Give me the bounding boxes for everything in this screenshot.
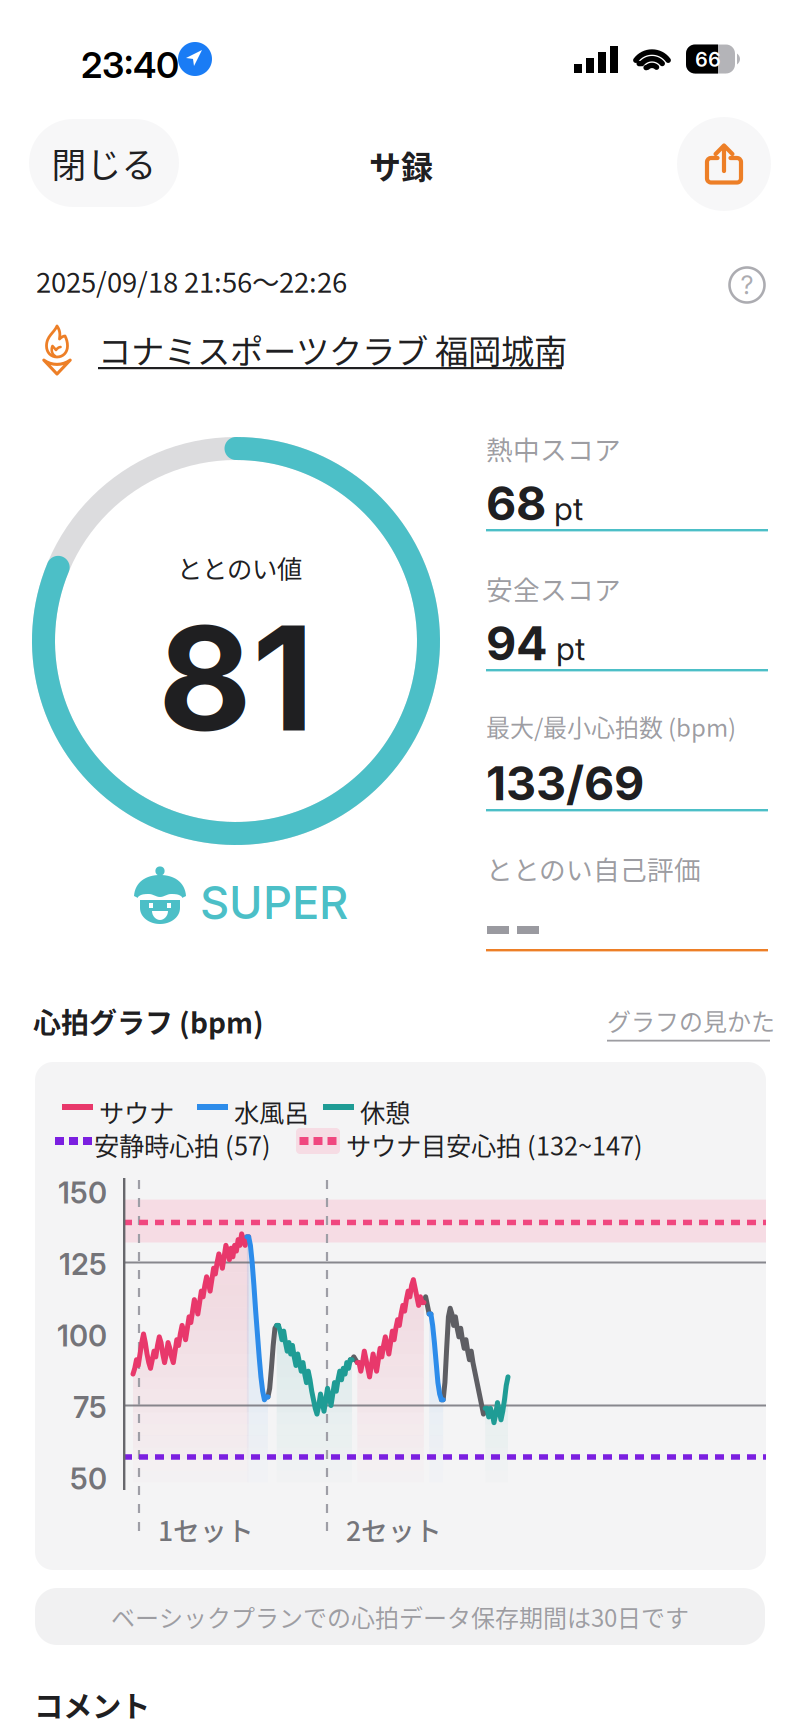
- staticText: サウナ目安心拍 (132~147): [346, 1126, 643, 1163]
- staticText: pt: [554, 489, 583, 528]
- staticText: 水風呂: [234, 1093, 309, 1130]
- staticText: 2セット: [346, 1510, 442, 1549]
- staticText: 安静時心拍 (57): [94, 1126, 271, 1163]
- button[interactable]: ヘルプ: [728, 266, 766, 304]
- staticText: 133/69: [486, 755, 644, 811]
- staticText: 安全スコア: [486, 569, 621, 608]
- staticText: SUPER: [200, 875, 348, 930]
- staticText: 最大/最小心拍数 (bpm): [486, 709, 736, 744]
- staticText: 68: [486, 475, 546, 531]
- staticText: 心拍グラフ (bpm): [33, 1001, 264, 1041]
- staticText: 2025/09/18 21:56〜22:26: [36, 261, 347, 301]
- staticText: 100: [57, 1318, 107, 1353]
- staticText: ?: [740, 270, 753, 300]
- staticText: ととのい値: [177, 549, 302, 586]
- staticText: 熱中スコア: [486, 429, 621, 468]
- staticText: コメント: [34, 1683, 150, 1725]
- staticText: コナミスポーツクラブ 福岡城南: [98, 325, 567, 373]
- staticText: ベーシックプランでの心拍データ保存期間は30日です: [111, 1599, 689, 1634]
- staticText: サ録: [369, 142, 433, 188]
- staticText: 75: [73, 1389, 107, 1425]
- staticText: 50: [70, 1461, 107, 1496]
- staticText: 94: [486, 615, 548, 671]
- button[interactable]: 閉じる: [29, 119, 179, 207]
- staticText: 23:40: [81, 43, 179, 87]
- staticText: ととのい自己評価: [486, 849, 701, 888]
- staticText: グラフの見かた: [607, 1003, 775, 1038]
- staticText: 66: [695, 47, 721, 72]
- staticText: 150: [58, 1175, 107, 1210]
- staticText: 81: [158, 591, 314, 765]
- button[interactable]: コナミスポーツクラブ 福岡城南: [33, 317, 573, 377]
- staticText: 閉じる: [51, 138, 156, 188]
- staticText: 125: [59, 1246, 107, 1282]
- staticText: サウナ: [99, 1093, 174, 1130]
- staticText: pt: [556, 629, 585, 668]
- button[interactable]: グラフの見かた: [607, 1003, 775, 1042]
- staticText: 1セット: [158, 1510, 254, 1549]
- staticText: 休憩: [360, 1093, 410, 1130]
- button[interactable]: 共有: [677, 117, 771, 211]
